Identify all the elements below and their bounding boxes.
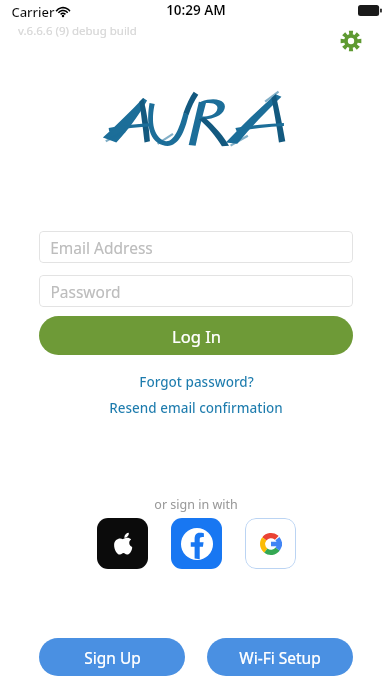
staticText: Sign Up: [84, 647, 141, 668]
staticText: Email Address: [50, 237, 153, 258]
button[interactable]: Log In: [39, 316, 353, 355]
staticText: or sign in with: [154, 496, 238, 512]
staticText: Wi-Fi Setup: [239, 647, 321, 668]
button[interactable]: Resend email confirmation: [0, 398, 392, 418]
staticText: Password: [50, 281, 121, 302]
button[interactable]: Sign in with Facebook: [171, 518, 222, 569]
staticText: Forgot password?: [139, 373, 254, 391]
button[interactable]: Password: [39, 275, 353, 307]
button[interactable]: Sign Up: [39, 638, 185, 676]
button[interactable]: Sign in with Apple: [97, 518, 148, 569]
staticText: Resend email confirmation: [109, 399, 283, 417]
button[interactable]: Wi-Fi Setup: [207, 638, 353, 676]
button[interactable]: Sign in with Google: [245, 518, 296, 569]
button[interactable]: Settings: [334, 24, 367, 57]
staticText: v.6.6.6 (9) debug build: [18, 23, 137, 39]
staticText: Log In: [172, 325, 221, 347]
staticText: 10:29 AM: [166, 1, 226, 19]
staticText: Carrier: [11, 3, 55, 21]
button[interactable]: Email Address: [39, 231, 353, 263]
button[interactable]: Forgot password?: [0, 372, 392, 392]
